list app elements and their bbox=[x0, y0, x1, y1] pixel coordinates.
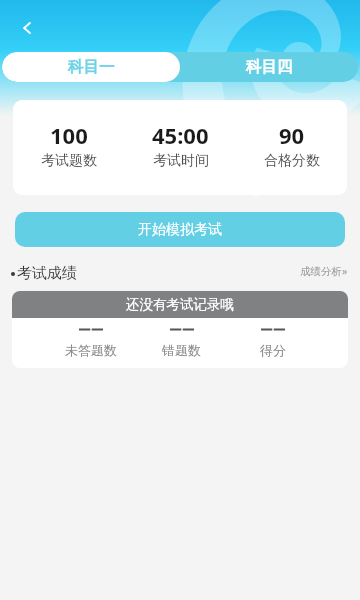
button[interactable]: 科目四 bbox=[180, 52, 358, 82]
staticText: 考试成绩 bbox=[17, 264, 77, 283]
button[interactable]: 开始模拟考试 bbox=[15, 212, 345, 247]
staticText: 考试题数 bbox=[41, 152, 97, 170]
staticText: 科目四 bbox=[246, 57, 293, 77]
button[interactable]: 成绩分析» bbox=[300, 264, 348, 278]
button[interactable]: Back bbox=[9, 10, 45, 46]
staticText: 考试时间 bbox=[153, 152, 209, 170]
staticText: 未答题数 bbox=[65, 342, 117, 358]
staticText: 100 bbox=[50, 120, 88, 150]
staticText: 合格分数 bbox=[264, 152, 320, 170]
staticText: 90 bbox=[279, 120, 305, 150]
staticText: 开始模拟考试 bbox=[138, 221, 222, 239]
staticText: 成绩分析» bbox=[300, 264, 348, 278]
staticText: 45:00 bbox=[152, 120, 209, 150]
staticText: 科目一 bbox=[68, 57, 115, 77]
staticText: 还没有考试记录哦 bbox=[126, 296, 234, 313]
button[interactable]: 科目一 bbox=[2, 52, 180, 82]
staticText: 得分 bbox=[260, 342, 286, 358]
staticText: 错题数 bbox=[162, 342, 201, 358]
